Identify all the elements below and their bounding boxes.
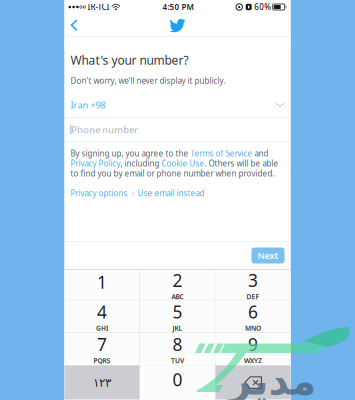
staticText: مدیر: [228, 358, 316, 400]
staticText: DEF: [246, 292, 259, 301]
staticText: PQRS: [93, 356, 110, 365]
button[interactable]: Delete: [215, 365, 290, 399]
staticText: 2: [172, 269, 182, 292]
staticText: What's your number?: [70, 52, 188, 68]
staticText: Cookie Use: [161, 158, 204, 169]
staticText: IR-TCI: [85, 2, 109, 12]
staticText: Privacy Policy: [70, 158, 120, 169]
staticText: TUV: [171, 356, 184, 365]
button[interactable]: 3: [215, 270, 290, 300]
button[interactable]: 2: [140, 270, 215, 300]
staticText: , including: [120, 158, 161, 169]
button[interactable]: Use email instead: [137, 188, 204, 198]
button[interactable]: 4: [64, 300, 139, 332]
staticText: 8: [172, 333, 182, 356]
button[interactable]: 5: [140, 300, 215, 332]
staticText: By signing up, you agree to the: [70, 148, 190, 159]
button[interactable]: 7: [64, 333, 139, 365]
staticText: 9: [248, 333, 258, 356]
staticText: 5: [172, 300, 182, 323]
staticText: 6: [248, 300, 258, 323]
staticText: JKL: [172, 324, 182, 333]
staticText: WXYZ: [244, 356, 262, 365]
staticText: MNO: [245, 324, 261, 333]
staticText: Don't worry, we'll never display it publ…: [70, 75, 225, 86]
button[interactable]: ۱۲۳: [64, 365, 139, 399]
staticText: 0: [172, 368, 182, 391]
staticText: Iran +98: [70, 99, 105, 111]
button[interactable]: 9: [215, 333, 290, 365]
staticText: 60%: [254, 2, 271, 12]
button[interactable]: Iran +98: [64, 86, 290, 117]
staticText: and: [252, 148, 268, 159]
staticText: GHI: [96, 324, 108, 333]
button[interactable]: 6: [215, 300, 290, 332]
staticText: ۱۲۳: [93, 376, 111, 389]
button[interactable]: Phone number: [64, 118, 290, 142]
button[interactable]: 8: [140, 333, 215, 365]
button[interactable]: 1: [64, 270, 139, 300]
staticText: . Others will be able: [204, 158, 278, 169]
staticText: Terms of Service: [190, 148, 252, 159]
staticText: 1: [97, 270, 107, 293]
button[interactable]: Next: [251, 247, 284, 263]
button[interactable]: Back: [64, 14, 84, 36]
staticText: ABC: [171, 292, 183, 301]
staticText: 4: [97, 300, 107, 323]
staticText: Privacy options: [70, 188, 127, 198]
staticText: Next: [257, 249, 278, 262]
staticText: ›: [131, 188, 133, 198]
button[interactable]: Privacy options: [70, 188, 127, 198]
button[interactable]: 0: [140, 365, 215, 399]
staticText: 4:50 PM: [163, 2, 194, 12]
staticText: 7: [97, 333, 107, 356]
staticText: Phone number: [71, 123, 138, 136]
staticText: Use email instead: [137, 188, 204, 198]
staticText: to find you by email or phone number whe…: [70, 168, 274, 179]
staticText: 3: [248, 269, 258, 292]
